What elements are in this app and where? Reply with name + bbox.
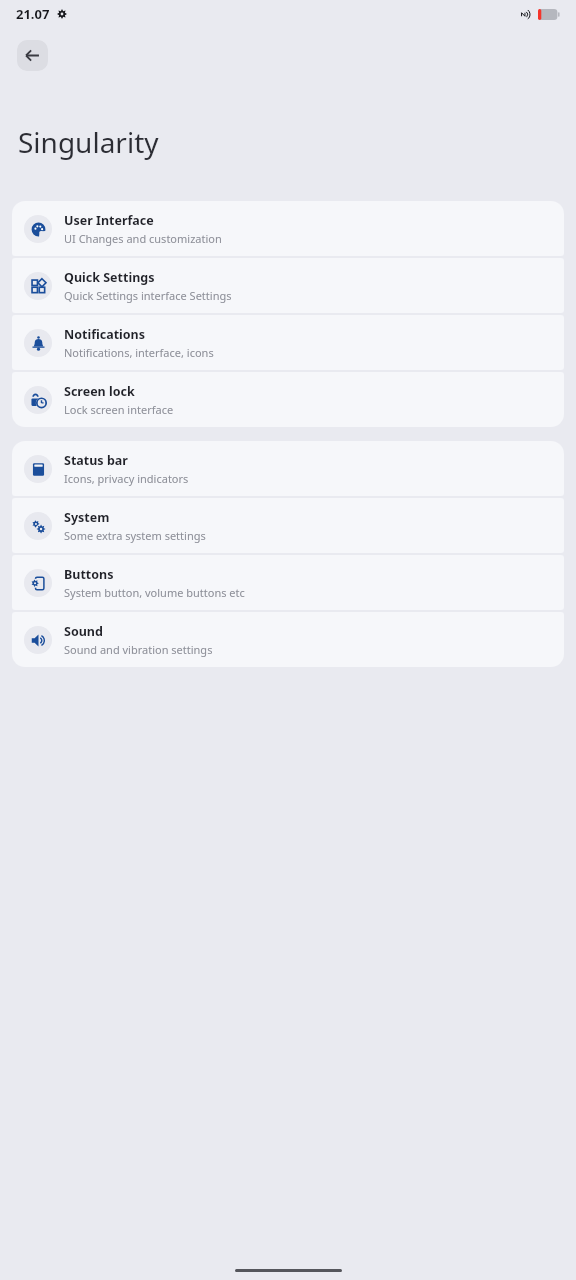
staticText: Some extra system settings [64, 528, 206, 543]
staticText: Singularity [18, 123, 159, 161]
staticText: Notifications, interface, icons [64, 345, 214, 360]
button[interactable]: Buttons [12, 555, 564, 610]
staticText: Status bar [64, 452, 128, 469]
staticText: Sound and vibration settings [64, 642, 213, 657]
staticText: User Interface [64, 212, 154, 229]
staticText: System [64, 509, 110, 526]
staticText: Quick Settings [64, 269, 155, 286]
staticText: System button, volume buttons etc [64, 585, 245, 600]
staticText: Icons, privacy indicators [64, 471, 189, 486]
staticText: Lock screen interface [64, 402, 174, 417]
button[interactable]: User Interface [12, 201, 564, 256]
staticText: Quick Settings interface Settings [64, 288, 232, 303]
button[interactable]: Status bar [12, 441, 564, 496]
staticText: Screen lock [64, 383, 135, 400]
button[interactable]: Back [17, 40, 48, 71]
staticText: UI Changes and customization [64, 231, 222, 246]
button[interactable]: System [12, 498, 564, 553]
button[interactable]: Quick Settings [12, 258, 564, 313]
staticText: Notifications [64, 326, 146, 343]
button[interactable]: Sound [12, 612, 564, 667]
staticText: 21.07 [16, 5, 50, 23]
button[interactable]: Notifications [12, 315, 564, 370]
staticText: Sound [64, 623, 103, 640]
button[interactable]: Screen lock [12, 372, 564, 427]
staticText: Buttons [64, 566, 114, 583]
